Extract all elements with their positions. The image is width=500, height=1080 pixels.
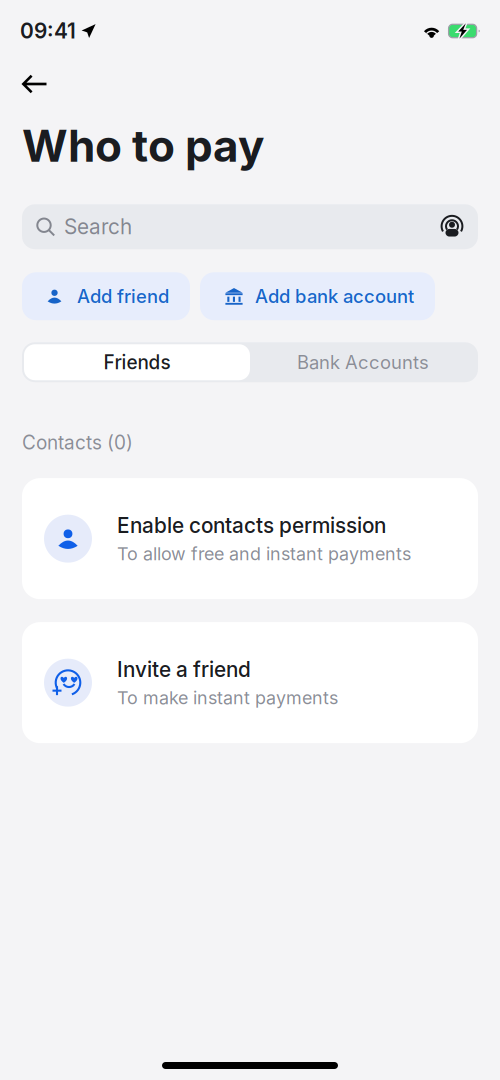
- button[interactable]: Scan to pay: [440, 215, 464, 239]
- button[interactable]: Back: [0, 62, 62, 106]
- staticText: To allow free and instant payments: [117, 543, 411, 564]
- staticText: Friends: [103, 351, 170, 374]
- button[interactable]: Invite a friend: [22, 622, 478, 743]
- button[interactable]: Enable contacts permission: [22, 478, 478, 599]
- button[interactable]: Add bank account: [200, 272, 435, 320]
- button[interactable]: Bank Accounts: [250, 344, 476, 380]
- button[interactable]: Friends: [24, 344, 250, 380]
- button[interactable]: Add friend: [22, 272, 190, 320]
- staticText: 09:41: [20, 18, 76, 44]
- staticText: Invite a friend: [117, 657, 251, 682]
- staticText: Who to pay: [22, 119, 264, 172]
- staticText: To make instant payments: [117, 687, 338, 708]
- staticText: Enable contacts permission: [117, 513, 386, 538]
- staticText: Bank Accounts: [297, 351, 429, 373]
- staticText: Search: [64, 214, 132, 239]
- staticText: Contacts (0): [22, 431, 133, 454]
- staticText: Add friend: [77, 285, 169, 307]
- staticText: Add bank account: [255, 285, 414, 307]
